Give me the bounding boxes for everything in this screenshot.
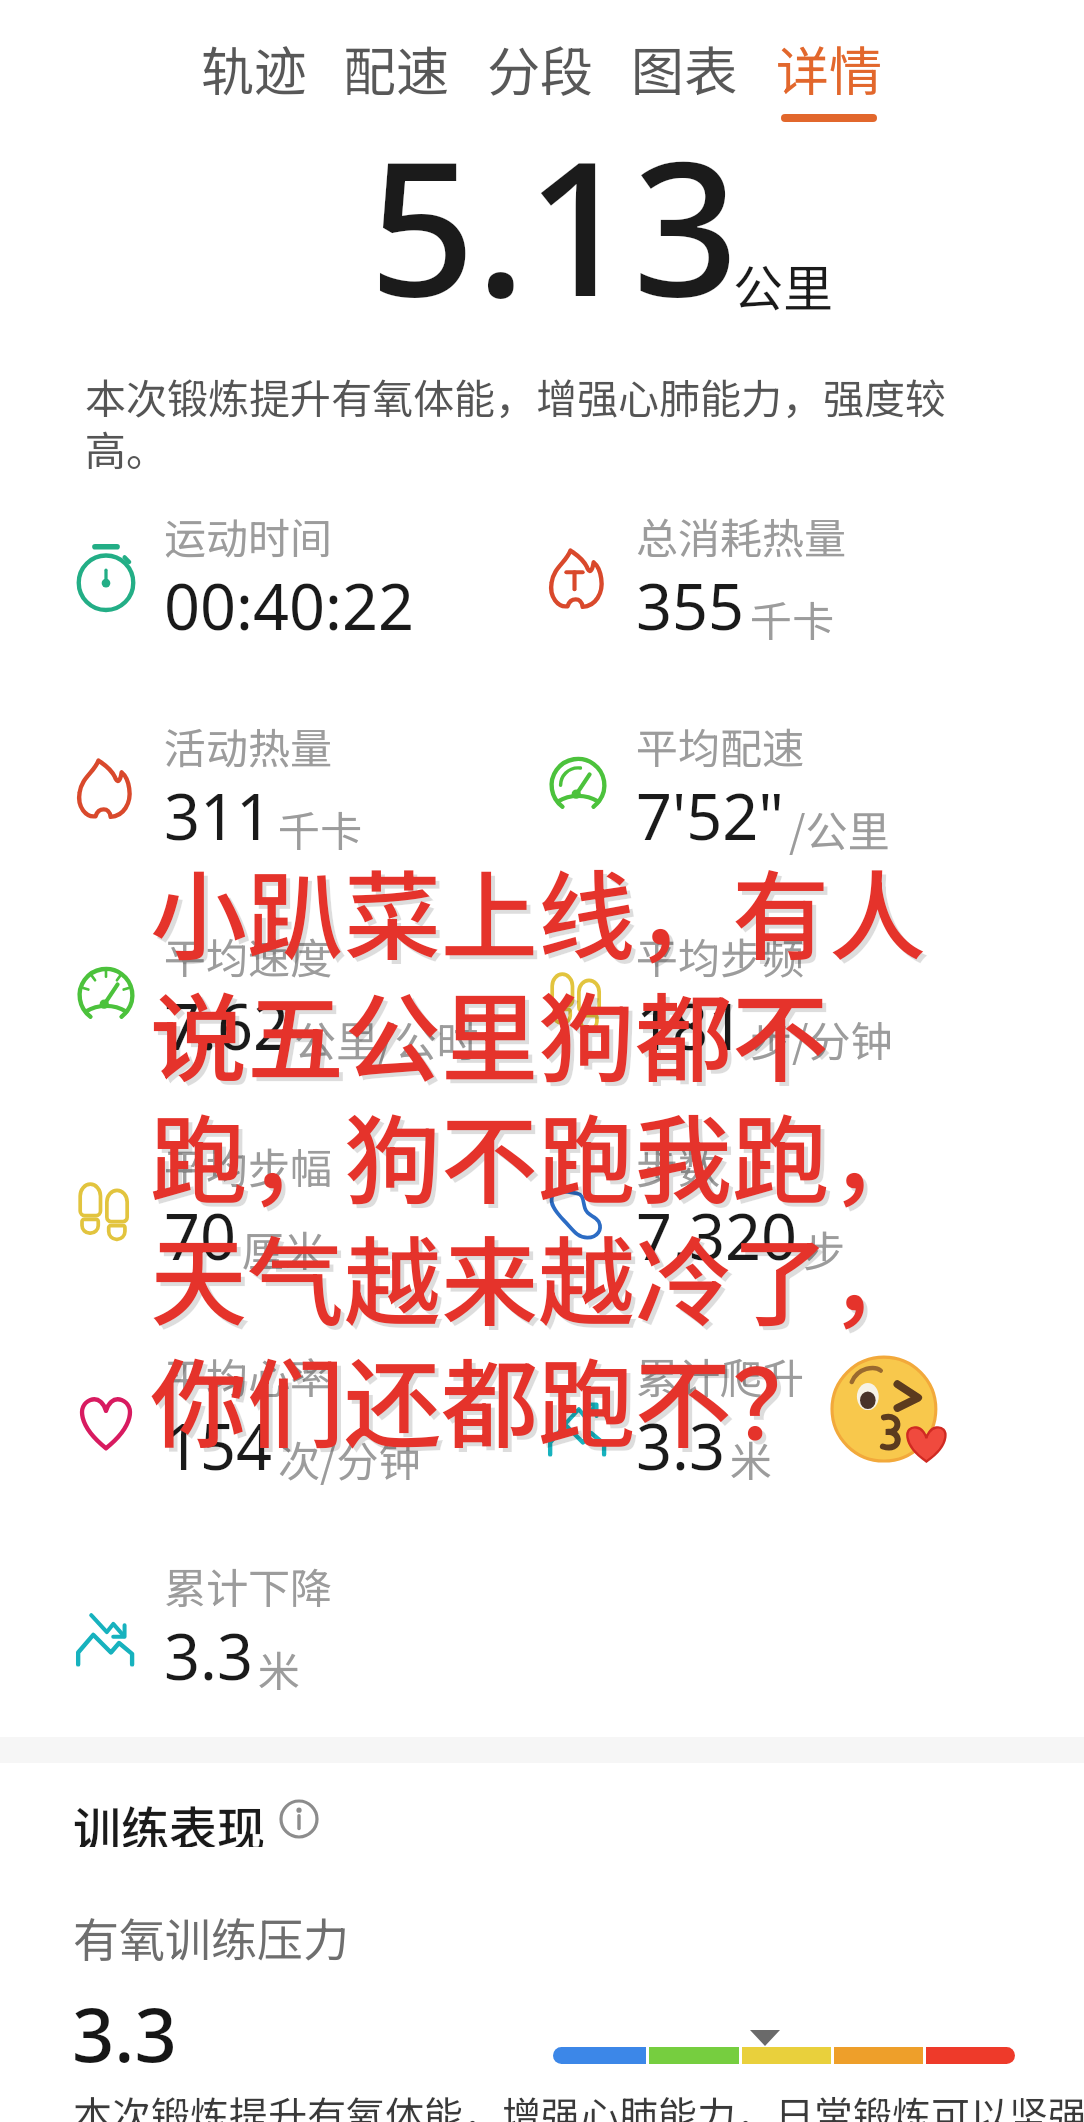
- staticText: 平均配速: [636, 715, 805, 776]
- staticText: 7'52": [636, 773, 784, 859]
- button[interactable]: 累计爬升: [548, 1319, 1068, 1509]
- staticText: 小趴菜上线，有人 说五公里狗都不 跑，狗不跑我跑， 天气越来越冷了， 你们还都跑…: [150, 839, 926, 1468]
- button[interactable]: 图表: [620, 30, 748, 130]
- button[interactable]: Info: [278, 1798, 320, 1840]
- button[interactable]: 平均步频: [548, 899, 1068, 1089]
- staticText: 平均速度: [164, 925, 333, 986]
- button[interactable]: 平均配速: [548, 689, 1068, 879]
- button[interactable]: 平均速度: [76, 899, 596, 1089]
- button[interactable]: 累计下降: [76, 1529, 596, 1719]
- staticText: 本次锻炼提升有氧体能，增强心肺能力，强度较 高。: [85, 366, 946, 477]
- staticText: 分段: [487, 30, 593, 107]
- staticText: 3.3: [636, 1403, 725, 1489]
- staticText: 步数: [636, 1135, 721, 1196]
- staticText: 公里/公时: [294, 1008, 479, 1069]
- staticText: 活动热量: [164, 715, 333, 776]
- staticText: 7,320: [636, 1193, 798, 1279]
- staticText: 图表: [631, 30, 737, 107]
- staticText: 5.13: [369, 97, 739, 350]
- staticText: 小趴菜上线，有人 说五公里狗都不 跑，狗不跑我跑， 天气越来越冷了， 你们还都跑…: [154, 843, 930, 1472]
- button[interactable]: 分段: [476, 30, 604, 130]
- button[interactable]: 平均步幅: [76, 1109, 596, 1299]
- staticText: 公里: [733, 249, 833, 321]
- staticText: 运动时间: [164, 505, 333, 566]
- staticText: 平均步频: [636, 925, 805, 986]
- staticText: 轨迹: [201, 30, 307, 107]
- button[interactable]: 详情: [765, 30, 893, 130]
- button[interactable]: 平均心率: [76, 1319, 596, 1509]
- button[interactable]: 配速: [332, 30, 460, 130]
- staticText: 步/分钟: [750, 1008, 893, 1069]
- staticText: 次/分钟: [278, 1428, 421, 1489]
- staticText: 千卡: [278, 798, 363, 859]
- staticText: 训练表现: [73, 1791, 266, 1847]
- staticText: 3.3: [164, 1613, 253, 1699]
- button[interactable]: 轨迹: [190, 30, 318, 130]
- staticText: 7.62: [164, 983, 289, 1069]
- staticText: 3.3: [72, 1983, 177, 2084]
- staticText: 米: [258, 1638, 301, 1699]
- staticText: 步: [803, 1218, 846, 1279]
- staticText: 平均步幅: [164, 1135, 333, 1196]
- button[interactable]: 运动时间: [76, 479, 596, 669]
- staticText: 154: [164, 1403, 273, 1489]
- staticText: 平均心率: [164, 1345, 333, 1406]
- staticText: /公里: [789, 798, 890, 859]
- staticText: 千卡: [750, 588, 835, 649]
- staticText: 00:40:22: [164, 563, 414, 649]
- staticText: 累计下降: [164, 1555, 333, 1616]
- staticText: 总消耗热量: [636, 505, 847, 566]
- staticText: 米: [730, 1428, 773, 1489]
- staticText: 355: [636, 563, 745, 649]
- button[interactable]: 训练表现: [73, 1791, 320, 1847]
- staticText: 厘米: [242, 1218, 327, 1279]
- button[interactable]: 总消耗热量: [548, 479, 1068, 669]
- staticText: 181: [636, 983, 745, 1069]
- staticText: 配速: [343, 30, 449, 107]
- staticText: 70: [164, 1193, 237, 1279]
- staticText: 累计爬升: [636, 1345, 805, 1406]
- staticText: 有氧训练压力: [73, 1904, 349, 1971]
- staticText: 本次锻炼提升有氧体能，增强心肺能力，日常锻炼可以坚强: [73, 2085, 1084, 2122]
- button[interactable]: 步数: [548, 1109, 1068, 1299]
- button[interactable]: 活动热量: [76, 689, 596, 879]
- staticText: 详情: [776, 30, 882, 107]
- staticText: 311: [164, 773, 273, 859]
